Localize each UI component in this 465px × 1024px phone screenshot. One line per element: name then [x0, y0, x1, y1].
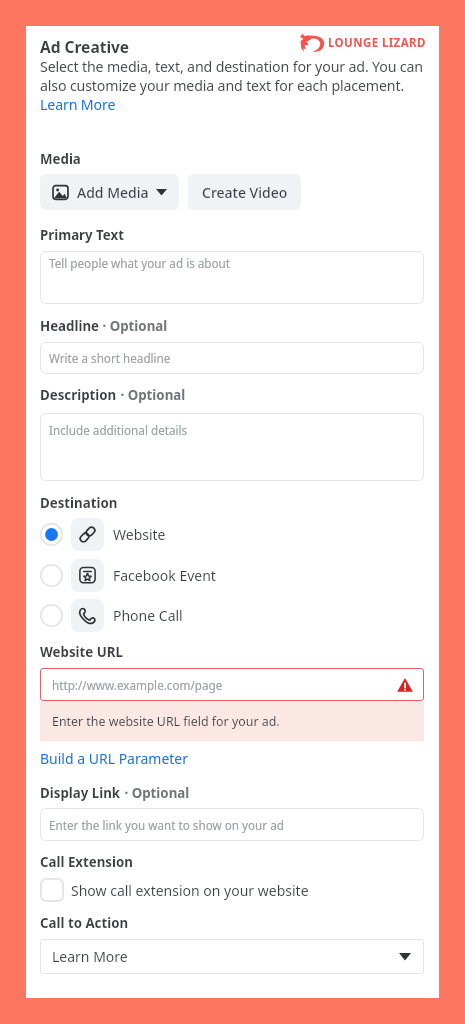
staticText: Select the media, text, and destination … [40, 57, 423, 76]
staticText: Write a short headline [49, 350, 171, 366]
button[interactable]: Tell people what your ad is about [40, 251, 424, 304]
staticText: Media [40, 150, 81, 168]
button[interactable]: Add Media [40, 174, 179, 210]
staticText: Add Media [77, 183, 149, 202]
button[interactable]: http://www.example.com/page [40, 668, 424, 701]
staticText: Tell people what your ad is about [49, 255, 231, 271]
button[interactable]: Facebook Event [40, 558, 424, 592]
button[interactable]: Learn More [40, 939, 424, 974]
staticText: Phone Call [113, 606, 183, 625]
button[interactable]: Show call extension on your website [40, 878, 313, 902]
staticText: Display Link [40, 784, 121, 802]
staticText: also customize your media and text for e… [40, 76, 405, 95]
staticText: Website URL [40, 643, 123, 661]
staticText: Enter the link you want to show on your … [49, 817, 284, 833]
staticText: Learn More [52, 947, 128, 966]
other: Lounge Lizard logo [300, 33, 426, 52]
staticText: Ad Creative [40, 36, 130, 57]
button[interactable]: Create Video [188, 174, 301, 210]
staticText: Primary Text [40, 226, 124, 244]
staticText: · Optional [121, 784, 190, 802]
button[interactable]: Write a short headline [40, 342, 424, 374]
button[interactable]: Website [40, 517, 424, 551]
staticText: Website [113, 525, 166, 544]
staticText: Call to Action [40, 914, 129, 932]
staticText: Enter the website URL field for your ad. [52, 713, 280, 730]
button[interactable]: Phone Call [40, 598, 424, 632]
staticText: Description [40, 386, 117, 404]
button[interactable]: Learn More [40, 95, 116, 114]
button[interactable]: Include additional details [40, 413, 424, 481]
staticText: Headline [40, 317, 99, 335]
staticText: http://www.example.com/page [52, 677, 223, 693]
staticText: Create Video [202, 183, 288, 202]
staticText: · Optional [99, 317, 168, 335]
staticText: LOUNGE LIZARD [328, 35, 426, 51]
staticText: Show call extension on your website [71, 881, 309, 900]
button[interactable]: Build a URL Parameter [40, 749, 189, 768]
staticText: · Optional [117, 386, 186, 404]
button[interactable]: Enter the link you want to show on your … [40, 808, 424, 841]
staticText: Destination [40, 494, 118, 512]
staticText: Facebook Event [113, 566, 216, 585]
staticText: Include additional details [49, 422, 188, 438]
staticText: Call Extension [40, 853, 133, 871]
